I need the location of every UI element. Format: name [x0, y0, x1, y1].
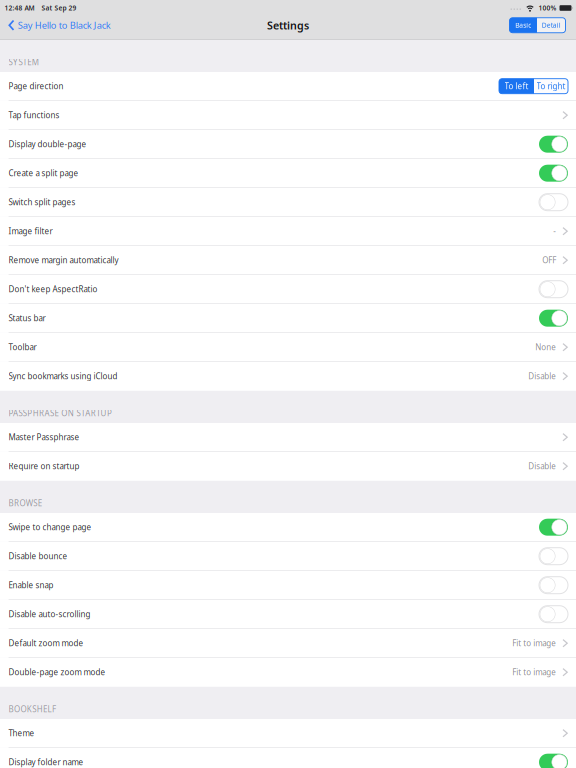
button[interactable]: Display folder name — [0, 748, 576, 768]
staticText: Don't keep AspectRatio — [9, 284, 98, 294]
staticText: Image filter — [9, 226, 53, 236]
staticText: Say Hello to Black Jack — [18, 19, 111, 31]
staticText: Enable snap — [9, 580, 54, 590]
staticText: None — [535, 342, 556, 352]
button[interactable]: Don't keep AspectRatio — [0, 275, 576, 304]
button[interactable]: Theme — [0, 719, 576, 748]
staticText: Disable — [528, 461, 556, 471]
button[interactable]: To left — [499, 79, 534, 94]
staticText: Tap functions — [9, 110, 60, 120]
staticText: PASSPHRASE ON STARTUP — [9, 408, 112, 418]
staticText: Detail — [542, 21, 561, 30]
button[interactable]: Page direction — [0, 72, 576, 101]
staticText: SYSTEM — [9, 57, 39, 67]
button[interactable]: To right — [534, 79, 568, 94]
button[interactable]: Double-page zoom mode — [0, 658, 576, 687]
button[interactable]: Toolbar — [0, 333, 576, 362]
staticText: Toolbar — [9, 342, 37, 352]
staticText: To right — [536, 81, 565, 91]
staticText: Double-page zoom mode — [9, 667, 106, 677]
button[interactable]: Say Hello to Black Jack — [0, 16, 117, 34]
staticText: Settings — [267, 18, 309, 32]
button[interactable]: Master Passphrase — [0, 423, 576, 452]
staticText: Theme — [9, 728, 35, 738]
button[interactable]: Enable snap — [0, 571, 576, 600]
staticText: Display double-page — [9, 139, 87, 149]
button[interactable]: Swipe to change page — [0, 513, 576, 542]
button[interactable]: Create a split page — [0, 159, 576, 188]
staticText: Fit to image — [512, 638, 556, 648]
button[interactable]: Remove margin automatically — [0, 246, 576, 275]
staticText: Switch split pages — [9, 197, 76, 207]
staticText: Fit to image — [512, 667, 556, 677]
button[interactable]: Image filter — [0, 217, 576, 246]
button[interactable]: Display double-page — [0, 130, 576, 159]
button[interactable]: Basic — [509, 18, 537, 33]
staticText: Swipe to change page — [9, 522, 92, 532]
button[interactable]: Require on startup — [0, 452, 576, 481]
staticText: Disable bounce — [9, 551, 68, 561]
staticText: 100% — [538, 4, 556, 12]
button[interactable]: Status bar — [0, 304, 576, 333]
staticText: Display folder name — [9, 757, 84, 767]
staticText: Remove margin automatically — [9, 255, 119, 265]
staticText: BROWSE — [9, 498, 42, 508]
staticText: - — [553, 226, 556, 236]
button[interactable]: Switch split pages — [0, 188, 576, 217]
staticText: Basic — [515, 21, 531, 30]
button[interactable]: Disable bounce — [0, 542, 576, 571]
button[interactable]: Default zoom mode — [0, 629, 576, 658]
button[interactable]: Disable auto-scrolling — [0, 600, 576, 629]
staticText: Status bar — [9, 313, 46, 323]
staticText: BOOKSHELF — [9, 704, 56, 714]
staticText: Master Passphrase — [9, 432, 80, 442]
staticText: Page direction — [9, 81, 64, 91]
staticText: To left — [504, 81, 528, 91]
staticText: Require on startup — [9, 461, 80, 471]
staticText: Disable auto-scrolling — [9, 609, 91, 619]
staticText: Create a split page — [9, 168, 79, 178]
button[interactable]: Sync bookmarks using iCloud — [0, 362, 576, 391]
staticText: Disable — [528, 371, 556, 381]
staticText: Sat Sep 29 — [42, 4, 77, 12]
staticText: Sync bookmarks using iCloud — [9, 371, 118, 381]
staticText: OFF — [542, 255, 556, 265]
staticText: 12:48 AM — [5, 4, 35, 12]
button[interactable]: Detail — [537, 18, 565, 33]
button[interactable]: Tap functions — [0, 101, 576, 130]
staticText: Default zoom mode — [9, 638, 84, 648]
